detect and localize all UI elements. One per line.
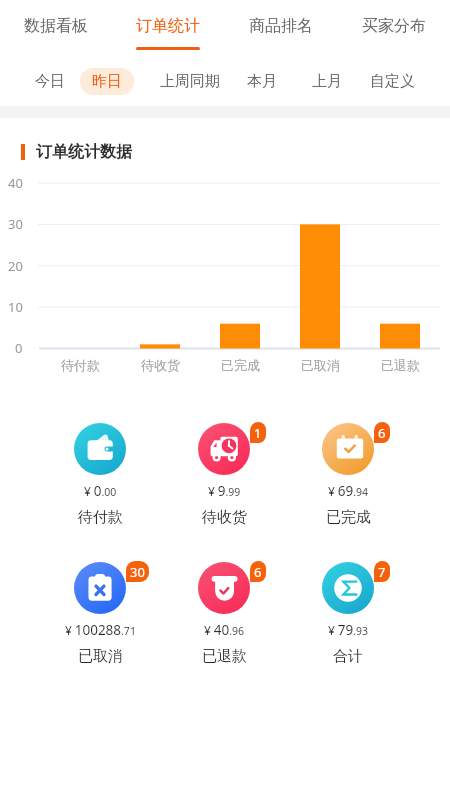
staticText: 待付款 bbox=[78, 508, 123, 527]
staticText: 订单统计数据 bbox=[36, 142, 132, 162]
button[interactable]: 已取消 bbox=[40, 560, 160, 666]
button[interactable]: 商品排名 bbox=[224, 0, 337, 53]
staticText: 本月 bbox=[247, 72, 277, 91]
button[interactable]: 已完成 bbox=[288, 421, 408, 527]
staticText: 6 bbox=[254, 563, 262, 581]
staticText: 10 bbox=[8, 298, 23, 316]
button[interactable]: 本月 bbox=[235, 68, 289, 95]
staticText: ¥ 69.94 bbox=[328, 482, 368, 500]
button[interactable]: 待付款 bbox=[40, 421, 160, 527]
staticText: 40 bbox=[8, 174, 23, 192]
button[interactable]: 待收货 bbox=[164, 421, 284, 527]
staticText: 商品排名 bbox=[249, 16, 313, 36]
staticText: 买家分布 bbox=[362, 16, 426, 36]
staticText: 已取消 bbox=[301, 357, 340, 373]
button[interactable]: 今日 bbox=[23, 68, 77, 95]
staticText: ¥ 100288.71 bbox=[65, 621, 136, 639]
staticText: 订单统计 bbox=[136, 16, 200, 36]
staticText: 已取消 bbox=[78, 647, 123, 666]
staticText: 待收货 bbox=[141, 357, 180, 373]
button[interactable]: 买家分布 bbox=[337, 0, 450, 53]
button[interactable]: 订单统计 bbox=[112, 0, 224, 53]
staticText: 今日 bbox=[35, 72, 65, 91]
staticText: 1 bbox=[254, 424, 262, 442]
button[interactable]: 上周同期 bbox=[148, 68, 232, 95]
staticText: 已完成 bbox=[221, 357, 260, 373]
staticText: ¥ 40.96 bbox=[204, 621, 244, 639]
button[interactable]: 昨日 bbox=[80, 68, 134, 95]
staticText: 20 bbox=[8, 257, 23, 275]
staticText: 30 bbox=[130, 563, 145, 581]
staticText: 已完成 bbox=[326, 508, 371, 527]
button[interactable]: 合计 bbox=[288, 560, 408, 666]
staticText: ¥ 9.99 bbox=[208, 482, 241, 500]
staticText: 7 bbox=[378, 563, 386, 581]
staticText: ¥ 79.93 bbox=[328, 621, 368, 639]
button[interactable]: 上月 bbox=[300, 68, 354, 95]
staticText: 已退款 bbox=[202, 647, 247, 666]
staticText: 上周同期 bbox=[160, 72, 220, 91]
staticText: 待付款 bbox=[61, 357, 100, 373]
staticText: 上月 bbox=[312, 72, 342, 91]
staticText: ¥ 0.00 bbox=[84, 482, 117, 500]
staticText: 合计 bbox=[333, 647, 363, 666]
staticText: 自定义 bbox=[370, 72, 415, 91]
staticText: 30 bbox=[8, 215, 23, 233]
staticText: 数据看板 bbox=[24, 16, 88, 36]
staticText: 昨日 bbox=[92, 72, 122, 91]
staticText: 6 bbox=[378, 424, 386, 442]
button[interactable]: 自定义 bbox=[358, 68, 427, 95]
staticText: 0 bbox=[15, 339, 23, 357]
button[interactable]: 数据看板 bbox=[0, 0, 112, 53]
button[interactable]: 已退款 bbox=[164, 560, 284, 666]
staticText: 已退款 bbox=[381, 357, 420, 373]
staticText: 待收货 bbox=[202, 508, 247, 527]
